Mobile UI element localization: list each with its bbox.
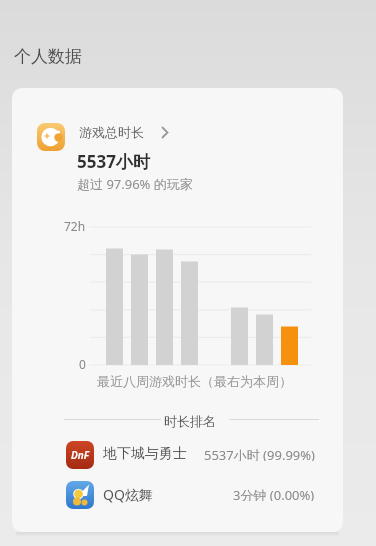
staticText: 游戏总时长 — [79, 124, 144, 140]
staticText: 72h — [64, 218, 86, 234]
button[interactable] — [66, 439, 315, 471]
staticText: 最近八周游戏时长（最右为本周） — [97, 373, 292, 389]
staticText: 超过 97.96% 的玩家 — [77, 175, 193, 193]
staticText: 5537小时 — [77, 150, 150, 173]
staticText: QQ炫舞 — [103, 485, 153, 504]
staticText: 时长排名 — [164, 413, 216, 429]
staticText: 3分钟 (0.00%) — [233, 486, 315, 501]
staticText: 地下城与勇士 — [103, 445, 187, 463]
staticText: 5537小时 (99.99%) — [204, 446, 315, 461]
button[interactable] — [37, 123, 65, 151]
button[interactable] — [66, 479, 315, 511]
staticText: 个人数据 — [14, 46, 82, 67]
button[interactable]: 游戏总时长 — [79, 124, 169, 140]
staticText: 0 — [79, 356, 86, 372]
staticText: DnF — [71, 448, 89, 462]
